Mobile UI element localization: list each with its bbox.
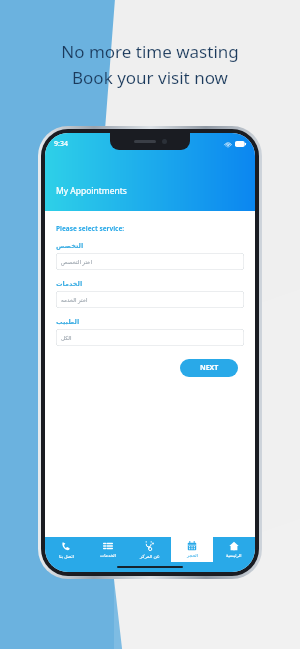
- staticText: الخدمات: [56, 280, 83, 288]
- staticText: الطبيب: [56, 318, 80, 326]
- staticText: Book your visit now: [72, 66, 228, 89]
- button[interactable]: الحجز: [171, 537, 213, 562]
- button[interactable]: الرئيسية: [213, 537, 255, 562]
- button[interactable]: اختر الخدمه: [56, 291, 244, 308]
- button[interactable]: الخدمات: [87, 537, 129, 562]
- button[interactable]: الكل: [56, 329, 244, 346]
- staticText: 9:34: [54, 139, 68, 149]
- button[interactable]: My Appointments: [56, 185, 127, 197]
- staticText: اتصل بنا: [59, 553, 74, 559]
- staticText: اختر الخدمه: [61, 296, 88, 303]
- staticText: التخصص: [56, 242, 84, 250]
- staticText: الحجز: [187, 553, 198, 558]
- button[interactable]: عن المركز: [129, 537, 171, 562]
- staticText: Please select service:: [56, 224, 125, 233]
- staticText: No more time wasting: [61, 40, 239, 63]
- button[interactable]: اتصل بنا: [45, 537, 87, 562]
- staticText: الكل: [61, 335, 72, 341]
- button[interactable]: NEXT: [180, 359, 238, 377]
- staticText: NEXT: [200, 363, 219, 373]
- staticText: الخدمات: [100, 553, 116, 558]
- staticText: عن المركز: [140, 553, 160, 559]
- staticText: اختر التخصص: [61, 258, 92, 265]
- button[interactable]: اختر التخصص: [56, 253, 244, 270]
- staticText: الرئيسية: [226, 553, 242, 558]
